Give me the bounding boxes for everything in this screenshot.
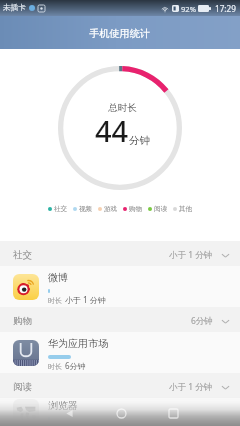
staticText: 时长 <box>48 422 62 426</box>
staticText: 6分钟 <box>65 360 86 371</box>
button[interactable]: Home <box>108 398 134 424</box>
staticText: 小于 1 分钟 <box>169 381 213 393</box>
staticText: 6分钟 <box>191 315 213 327</box>
staticText: 小于 1 分钟 <box>169 249 213 261</box>
button[interactable]: 华为应用市场 <box>0 332 240 373</box>
staticText: 阅读 <box>13 381 32 393</box>
other: 微博 <box>13 274 39 300</box>
staticText: 购物 <box>13 315 32 327</box>
staticText: 游戏 <box>104 205 118 213</box>
staticText: 44 <box>95 111 129 150</box>
staticText: 社交 <box>13 249 32 261</box>
staticText: 阅读 <box>154 205 168 213</box>
staticText: 购物 <box>129 205 143 213</box>
staticText: 小于 1 分钟 <box>65 294 106 305</box>
button[interactable]: Recents <box>160 398 186 424</box>
staticText: 浏览器 <box>48 399 78 412</box>
staticText: 17:29 <box>215 3 236 14</box>
staticText: 小于 1 分钟 <box>65 422 106 426</box>
staticText: 时长 <box>48 362 62 371</box>
staticText: 华为应用市场 <box>48 337 108 350</box>
staticText: 92% <box>181 4 196 14</box>
other: 浏览器 <box>13 399 39 425</box>
staticText: 未插卡 <box>3 3 26 13</box>
button[interactable]: 购物 <box>0 307 240 332</box>
staticText: 手机使用统计 <box>89 27 151 40</box>
staticText: 微博 <box>48 271 68 284</box>
staticText: 时长 <box>48 296 62 305</box>
staticText: 分钟 <box>129 134 150 147</box>
staticText: 视频 <box>79 205 93 213</box>
staticText: 其他 <box>179 205 193 213</box>
other: 华为应用市场 <box>13 340 39 366</box>
staticText: 总时长 <box>108 102 137 114</box>
button[interactable]: 阅读 <box>0 373 240 398</box>
button[interactable]: 社交 <box>0 241 240 266</box>
button[interactable]: 浏览器 <box>0 398 240 426</box>
button[interactable]: Back <box>56 398 82 424</box>
staticText: 社交 <box>54 205 68 213</box>
button[interactable]: 微博 <box>0 266 240 307</box>
